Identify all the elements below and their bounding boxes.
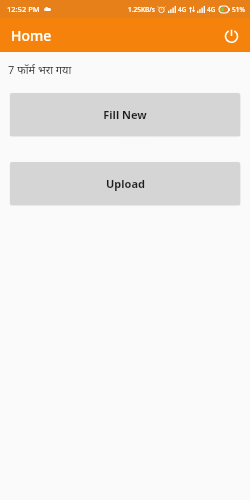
staticText: 4G bbox=[207, 5, 216, 14]
staticText: 7 फॉर्म भरा गया bbox=[8, 62, 72, 77]
staticText: Fill New bbox=[103, 107, 147, 122]
staticText: Home bbox=[11, 26, 52, 45]
staticText: Upload bbox=[106, 176, 145, 191]
button[interactable]: Logout bbox=[217, 21, 245, 49]
staticText: 1.25KB/s bbox=[128, 5, 155, 14]
staticText: 12:52 PM bbox=[7, 4, 40, 14]
staticText: 51% bbox=[232, 5, 245, 14]
button[interactable]: Fill New bbox=[10, 93, 240, 136]
staticText: 4G bbox=[178, 5, 187, 14]
button[interactable]: Upload bbox=[10, 162, 240, 205]
